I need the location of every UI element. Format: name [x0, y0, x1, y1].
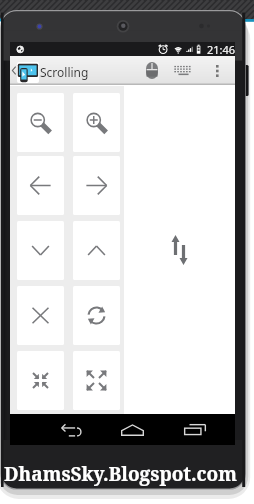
button[interactable]: Expand — [73, 351, 120, 410]
button[interactable]: Mouse mode — [138, 56, 165, 85]
button[interactable]: Navigate up — [10, 56, 18, 85]
staticText: 21:46 — [207, 42, 236, 56]
button[interactable]: Zoom in — [73, 93, 120, 152]
button[interactable]: Zoom out — [17, 93, 64, 152]
button[interactable]: Forward — [73, 156, 120, 215]
button[interactable]: Stop — [17, 286, 64, 345]
button[interactable]: More options — [207, 56, 228, 85]
staticText: Scrolling — [40, 64, 89, 80]
button[interactable]: Reload — [73, 286, 120, 345]
button[interactable]: Home — [102, 414, 162, 445]
staticText: DhamsSky.Blogspot.com — [4, 461, 238, 487]
button[interactable]: Back — [17, 156, 64, 215]
button[interactable]: Keyboard — [168, 56, 199, 85]
button[interactable]: Scroll down — [17, 221, 64, 280]
button[interactable]: Back — [40, 414, 100, 445]
button[interactable]: Collapse — [17, 351, 64, 410]
button[interactable]: Scroll up — [73, 221, 120, 280]
button[interactable]: Recent apps — [165, 414, 225, 445]
